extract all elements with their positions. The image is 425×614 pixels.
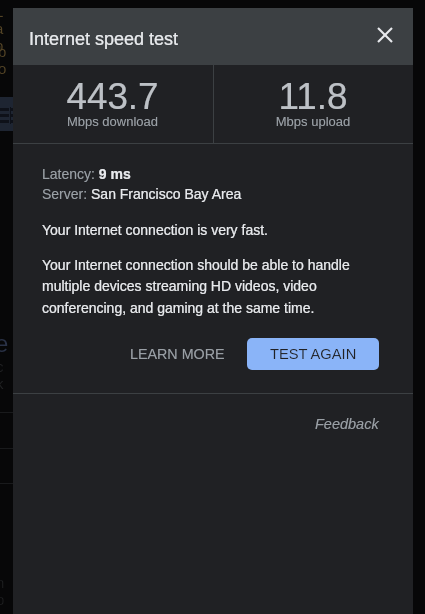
- staticText: LEARN MORE: [130, 346, 225, 362]
- staticText: Your Internet connection is very fast.: [42, 222, 268, 238]
- staticText: 11.8: [213, 76, 413, 117]
- staticText: TEST AGAIN: [270, 346, 357, 362]
- staticText: npr: [0, 574, 9, 614]
- button[interactable]: LEARN MORE: [120, 338, 235, 370]
- staticText: Your Internet connection should be able …: [42, 257, 367, 316]
- staticText: Latency: 9 ms: [42, 166, 131, 182]
- staticText: Internet speed test: [29, 29, 179, 49]
- staticText: Feedback: [315, 416, 379, 432]
- button[interactable]: TEST AGAIN: [247, 338, 379, 370]
- staticText: Server: San Francisco Bay Area: [42, 186, 242, 202]
- staticText: Mbps upload: [213, 114, 413, 129]
- button[interactable]: Feedback: [309, 411, 385, 437]
- staticText: 443.7: [13, 76, 212, 117]
- staticText: ck: [0, 358, 9, 392]
- button[interactable]: Close: [367, 17, 403, 53]
- staticText: Lab: [0, 3, 8, 54]
- staticText: e: [0, 330, 8, 357]
- staticText: Mbps download: [13, 114, 212, 129]
- staticText: bo: [0, 43, 11, 77]
